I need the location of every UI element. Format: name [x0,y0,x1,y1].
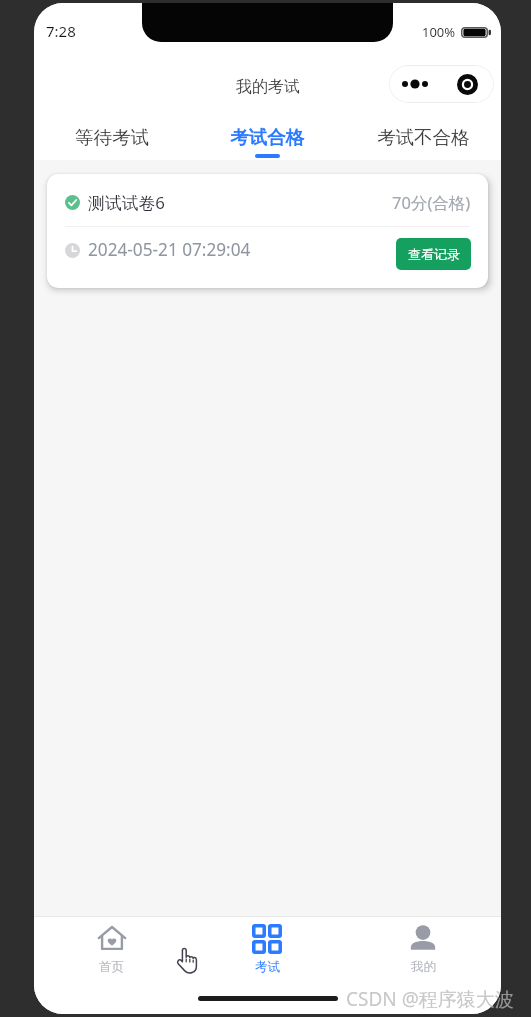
staticText: 我的 [411,959,436,975]
button[interactable]: 测试试卷6 [47,174,488,288]
staticText: 70分(合格) [392,191,471,214]
staticText: 7:28 [46,21,76,41]
staticText: 2024-05-21 07:29:04 [88,238,251,261]
button[interactable]: 我的 [345,917,501,980]
button[interactable]: 等待考试 [34,107,189,160]
staticText: CSDN @程序猿大波 [346,986,514,1012]
staticText: 考试 [255,959,280,975]
staticText: 测试试卷6 [88,191,165,214]
button[interactable]: 考试不合格 [345,107,501,160]
staticText: 考试合格 [230,126,304,149]
staticText: 100% [422,23,456,41]
staticText: 等待考试 [75,126,149,149]
button[interactable]: 查看记录 [396,238,471,270]
button[interactable]: More options and close [389,65,494,103]
staticText: 查看记录 [408,246,460,262]
button[interactable]: 考试合格 [189,107,345,160]
staticText: 我的考试 [236,77,300,97]
button[interactable]: 考试 [189,917,345,980]
button[interactable]: 首页 [34,917,189,980]
staticText: 考试不合格 [377,126,470,149]
staticText: 首页 [99,959,124,975]
